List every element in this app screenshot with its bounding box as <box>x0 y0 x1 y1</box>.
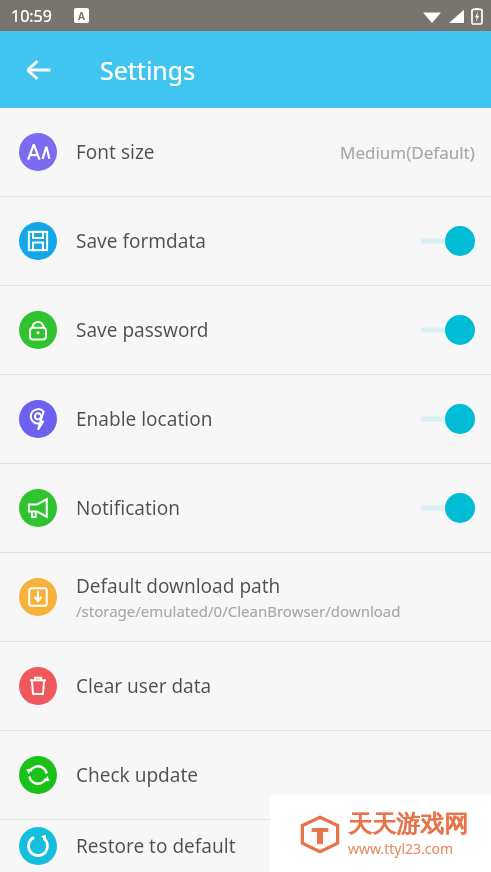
button[interactable]: Save formdata <box>0 197 491 285</box>
button[interactable]: Save password <box>0 286 491 374</box>
button[interactable]: Font size <box>0 108 491 196</box>
button[interactable]: Notification <box>0 464 491 552</box>
staticText: Notification <box>76 495 180 521</box>
staticText: Save formdata <box>76 228 206 254</box>
button[interactable]: Enable location <box>0 375 491 463</box>
staticText: Save password <box>76 317 209 343</box>
staticText: Check update <box>76 762 199 788</box>
button[interactable]: Back <box>15 46 63 94</box>
button[interactable]: Clear user data <box>0 642 491 730</box>
button[interactable]: Toggle Save password <box>417 314 475 346</box>
staticText: www.ttyl23.com <box>348 839 454 858</box>
button[interactable]: Toggle Save formdata <box>417 225 475 257</box>
staticText: /storage/emulated/0/CleanBrowser/downloa… <box>76 601 401 621</box>
staticText: Settings <box>100 53 196 87</box>
staticText: Clear user data <box>76 673 212 699</box>
staticText: A <box>78 9 85 23</box>
staticText: Enable location <box>76 406 213 432</box>
button[interactable]: Default download path <box>0 553 491 641</box>
staticText: Restore to default <box>76 833 236 859</box>
staticText: 10:59 <box>11 5 52 27</box>
staticText: Medium(Default) <box>340 141 475 164</box>
staticText: Default download path <box>76 573 281 599</box>
staticText: Font size <box>76 139 155 165</box>
staticText: 天天游戏网 <box>348 809 468 839</box>
button[interactable]: Restore to default <box>0 820 491 872</box>
button[interactable]: Check update <box>0 731 491 819</box>
button[interactable]: Toggle Enable location <box>417 403 475 435</box>
button[interactable]: Toggle Notification <box>417 492 475 524</box>
